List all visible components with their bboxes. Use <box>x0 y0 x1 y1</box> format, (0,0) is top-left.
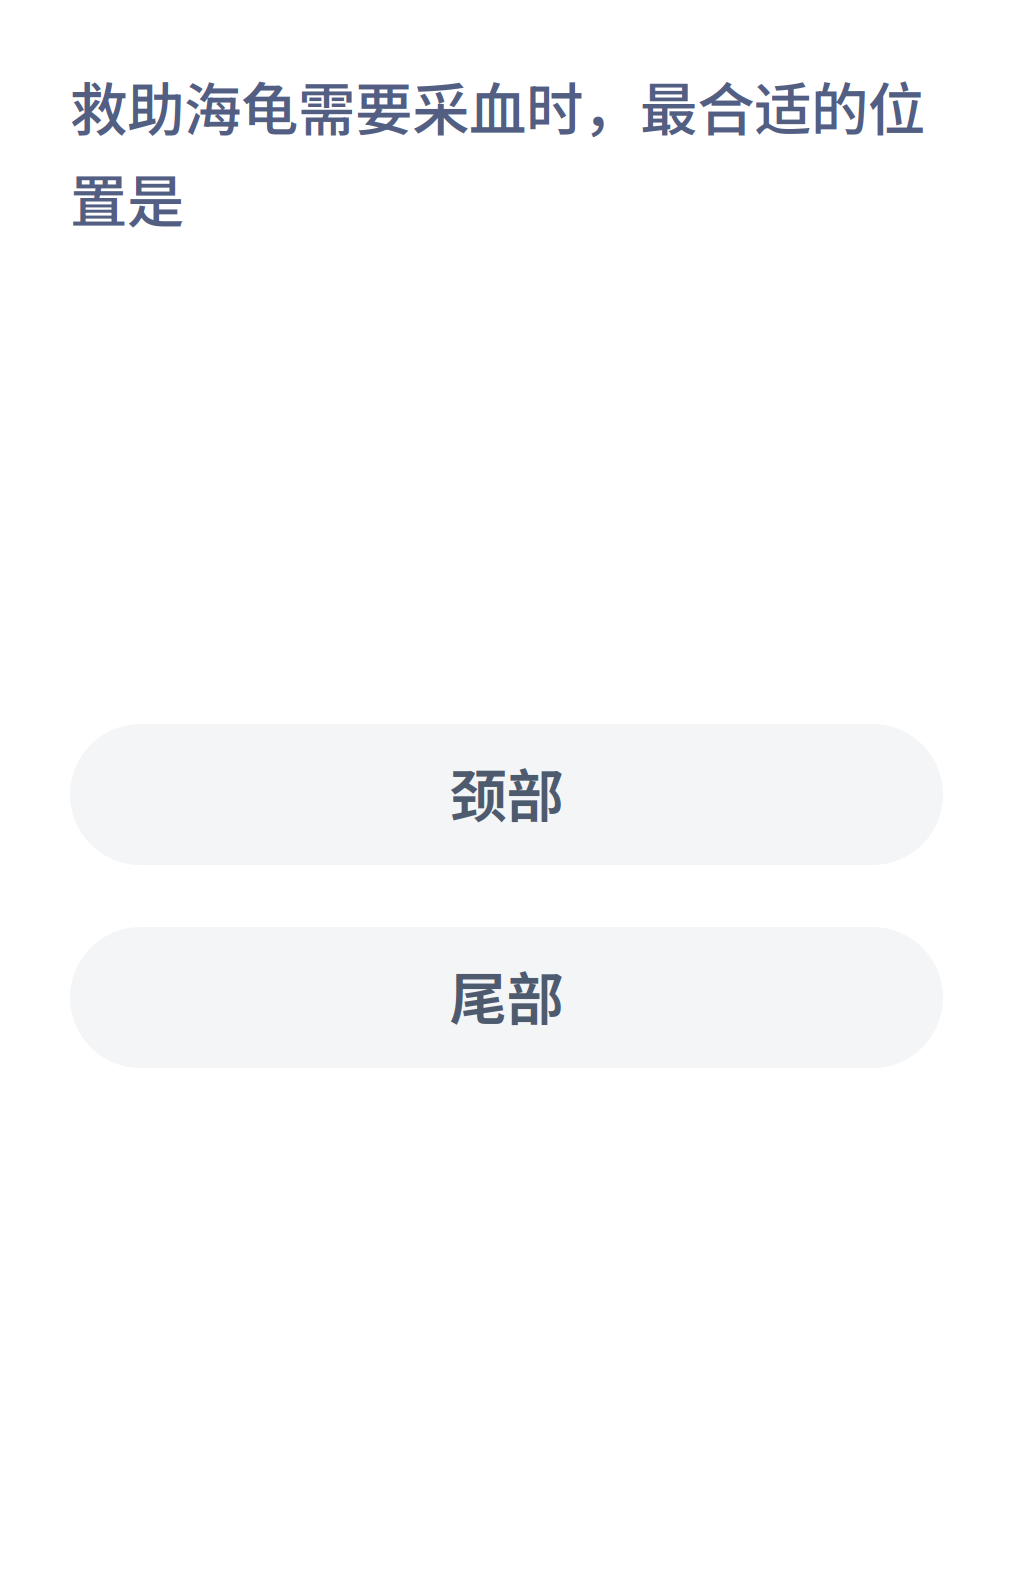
button[interactable]: 颈部 <box>70 724 943 865</box>
button[interactable]: 尾部 <box>70 927 943 1068</box>
staticText: 颈部 <box>449 750 563 833</box>
staticText: 尾部 <box>449 953 563 1036</box>
staticText: 救助海龟需要采血时，最合适的位置是 <box>70 64 925 239</box>
